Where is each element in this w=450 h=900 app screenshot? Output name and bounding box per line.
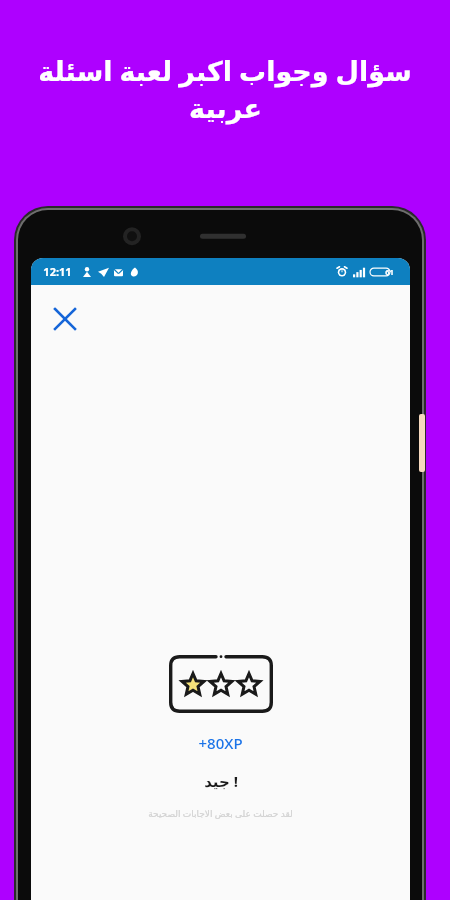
staticText: جيد ! xyxy=(204,771,238,791)
staticText: عربية xyxy=(189,93,262,124)
staticText: لقد حصلت على بعض الاجابات الصحيحة xyxy=(148,807,293,819)
button[interactable]: Stars earned: 1 of 3 xyxy=(169,655,273,713)
button[interactable]: Close xyxy=(43,297,87,341)
staticText: سؤال وجواب اكبر لعبة اسئلة xyxy=(38,52,412,89)
staticText: +80XP xyxy=(198,733,243,753)
staticText: 12:11 xyxy=(43,264,72,279)
staticText: 61 xyxy=(385,267,394,277)
